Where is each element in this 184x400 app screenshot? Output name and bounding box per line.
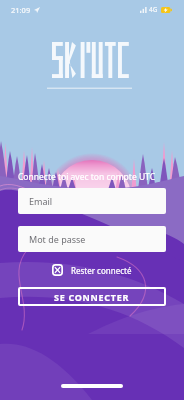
button[interactable]: Rester connecté: [52, 264, 132, 276]
button[interactable]: SE CONNECTER: [18, 287, 166, 306]
staticText: 21:09: [11, 5, 31, 15]
staticText: Connecte toi avec ton compte UTC: [18, 171, 156, 183]
staticText: Mot de passe: [29, 233, 86, 245]
staticText: 4G: [149, 5, 158, 14]
button[interactable]: Email: [18, 188, 166, 214]
staticText: SE CONNECTER: [54, 291, 130, 303]
staticText: Rester connecté: [71, 265, 132, 276]
button[interactable]: Mot de passe: [18, 226, 166, 252]
staticText: Email: [29, 195, 53, 207]
